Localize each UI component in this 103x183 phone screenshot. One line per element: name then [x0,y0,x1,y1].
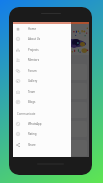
button[interactable]: WhatsApp [13,119,71,129]
staticText: Team [28,90,36,94]
staticText: Gallery [28,79,38,83]
staticText: Communicate [17,112,36,116]
staticText: About Us [28,37,41,41]
button[interactable]: Mentors [13,55,71,65]
staticText: Projects [28,48,39,52]
staticText: Home [28,27,36,31]
staticText: Mentors [28,58,40,62]
button[interactable] [15,64,87,80]
button[interactable]: Blogs [13,97,71,107]
staticText: WhatsApp [28,122,42,126]
button[interactable]: Gallery [13,76,71,86]
staticText: Rating [28,132,37,136]
button[interactable]: Team [13,87,71,97]
button[interactable] [15,121,87,137]
staticText: Forum [28,69,37,73]
button[interactable]: About Us [13,34,71,44]
button[interactable]: Projects [13,45,71,55]
button[interactable]: Share [13,140,71,150]
button[interactable] [15,102,87,118]
button[interactable] [15,140,87,156]
button[interactable] [15,83,87,99]
button[interactable]: Forum [13,66,71,76]
button[interactable]: Home [13,24,71,34]
staticText: Share [28,143,36,147]
button[interactable]: Rating [13,129,71,139]
staticText: Blogs [28,100,36,104]
